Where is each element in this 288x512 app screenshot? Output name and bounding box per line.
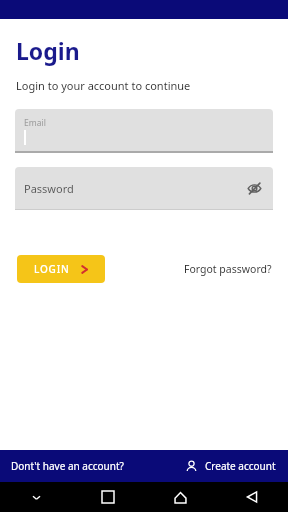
button[interactable]: Show password xyxy=(243,177,265,199)
button[interactable]: Forgot password? xyxy=(178,256,278,282)
button[interactable]: LOGIN xyxy=(17,255,105,283)
button[interactable]: Home xyxy=(144,482,216,512)
staticText: LOGIN xyxy=(34,262,70,276)
button[interactable]: Email xyxy=(15,109,273,153)
staticText: Dont't have an account? xyxy=(11,459,124,473)
button[interactable]: Recent apps xyxy=(72,482,144,512)
button[interactable]: Hide keyboard xyxy=(0,482,72,512)
button[interactable]: Create account xyxy=(179,455,282,477)
staticText: Email xyxy=(24,117,46,129)
button[interactable]: Back xyxy=(216,482,288,512)
staticText: Forgot password? xyxy=(184,262,272,276)
staticText: Password xyxy=(24,181,74,196)
button[interactable]: Password xyxy=(15,167,273,210)
button[interactable]: Dont't have an account? xyxy=(0,455,128,477)
staticText: Login to your account to continue xyxy=(16,78,191,93)
staticText: Create account xyxy=(205,459,276,473)
staticText: Login xyxy=(16,35,80,66)
